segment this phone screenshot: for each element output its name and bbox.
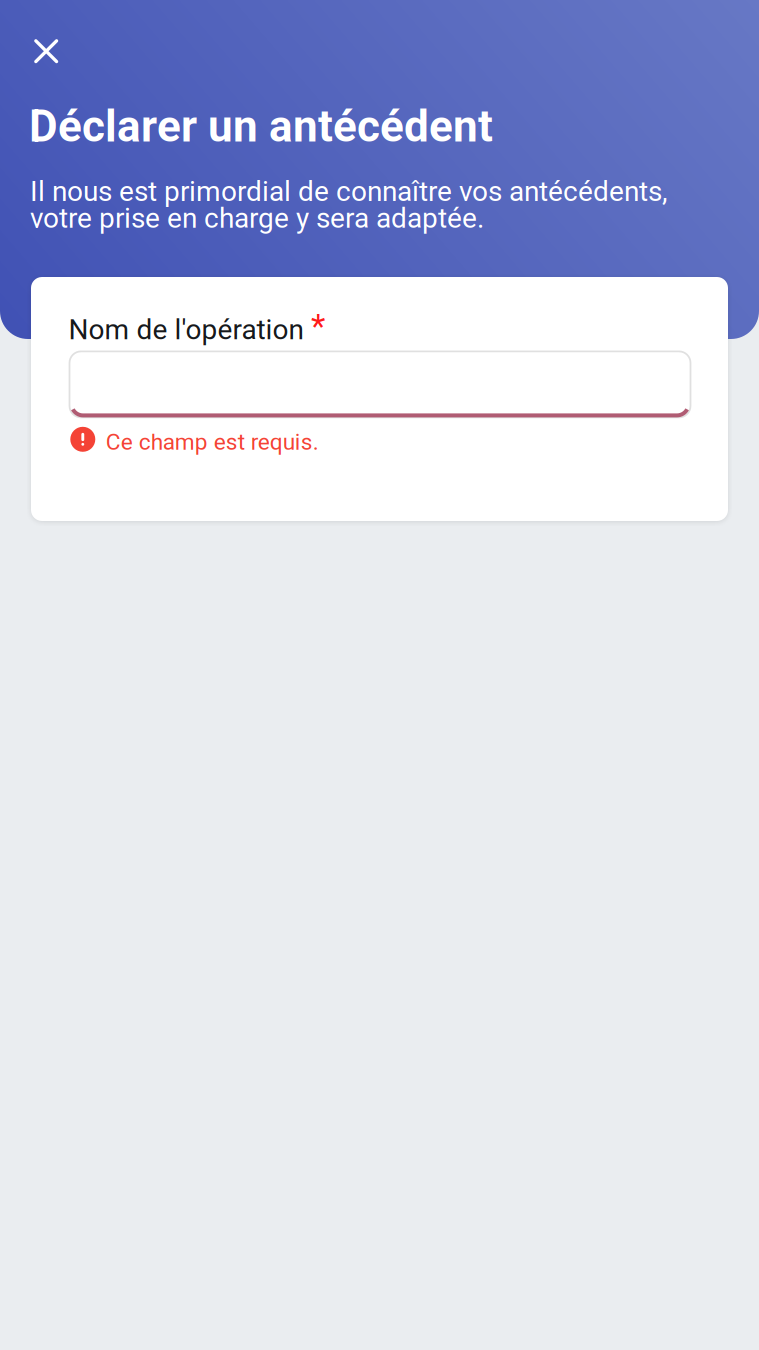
staticText: * <box>311 307 325 346</box>
staticText: Ce champ est requis. <box>106 429 319 455</box>
staticText: Nom de l'opération <box>68 313 303 346</box>
staticText: Déclarer un antécédent <box>29 101 493 152</box>
staticText: Il nous est primordial de connaître vos … <box>30 175 668 235</box>
button[interactable]: Fermer <box>20 25 72 77</box>
